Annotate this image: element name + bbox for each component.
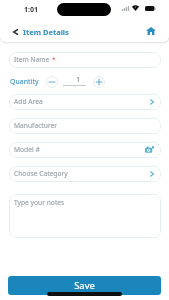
staticText: Item Name xyxy=(14,55,52,64)
staticText: Quantity xyxy=(10,77,39,87)
button[interactable]: Decrease quantity xyxy=(46,76,58,88)
staticText: Type your notes xyxy=(14,198,65,207)
button[interactable]: Choose Category xyxy=(9,166,161,182)
staticText: Add Area xyxy=(14,97,43,106)
staticText: Item Details xyxy=(23,27,69,37)
button[interactable]: Item Details xyxy=(0,24,75,40)
staticText: * xyxy=(52,55,56,64)
staticText: 1 xyxy=(76,75,81,85)
button[interactable]: Increase quantity xyxy=(93,76,105,88)
button[interactable]: Home xyxy=(142,22,159,39)
button[interactable]: Add Area xyxy=(9,94,161,110)
staticText: Choose Category xyxy=(14,169,68,178)
staticText: Manufacturer xyxy=(14,121,58,130)
button[interactable]: Save xyxy=(8,276,161,295)
button[interactable]: Type your notes xyxy=(9,194,161,238)
staticText: 1:01 xyxy=(24,5,38,15)
staticText: Save xyxy=(74,279,95,292)
staticText: Model # xyxy=(14,145,40,154)
